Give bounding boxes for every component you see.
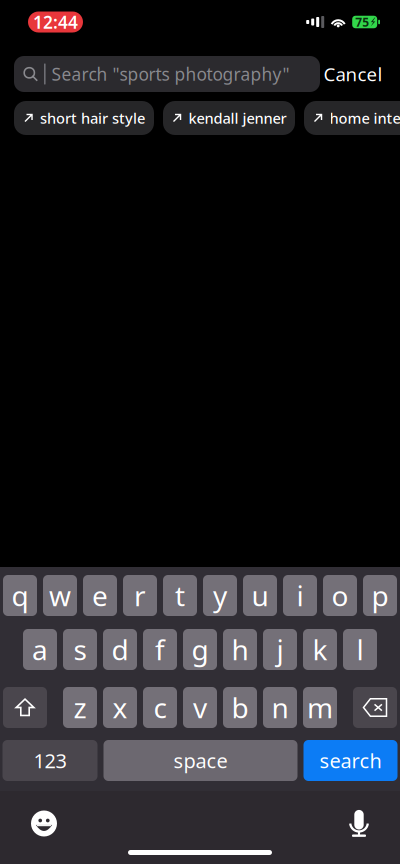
button[interactable]: a <box>23 629 57 670</box>
button[interactable]: g <box>183 629 217 670</box>
button[interactable]: Dictate <box>338 802 380 844</box>
staticText: search <box>319 747 381 774</box>
staticText: i <box>296 577 303 614</box>
staticText: w <box>49 577 71 614</box>
staticText: kendall jenner <box>188 108 286 128</box>
staticText: h <box>231 631 248 668</box>
button[interactable]: s <box>63 629 97 670</box>
button[interactable]: c <box>143 687 177 728</box>
button[interactable]: short hair style <box>14 101 154 135</box>
staticText: j <box>276 631 283 668</box>
button[interactable]: z <box>63 687 97 728</box>
staticText: z <box>73 689 86 726</box>
staticText: s <box>73 631 86 668</box>
staticText: q <box>11 577 28 614</box>
button[interactable]: w <box>43 575 77 616</box>
button[interactable]: h <box>223 629 257 670</box>
staticText: short hair style <box>40 108 145 128</box>
staticText: g <box>191 631 208 668</box>
staticText: k <box>312 631 327 668</box>
button[interactable]: home interior <box>304 101 400 135</box>
staticText: u <box>251 577 268 614</box>
staticText: 123 <box>33 747 66 774</box>
button[interactable]: e <box>83 575 117 616</box>
button[interactable]: kendall jenner <box>163 101 295 135</box>
button[interactable]: 123 <box>2 740 97 781</box>
staticText: Cancel <box>323 62 382 86</box>
button[interactable]: o <box>323 575 357 616</box>
staticText: e <box>92 577 108 614</box>
staticText: f <box>155 631 165 668</box>
staticText: space <box>173 747 227 774</box>
button[interactable]: y <box>203 575 237 616</box>
staticText: 12:44 <box>33 10 78 33</box>
button[interactable]: Shift <box>3 687 47 728</box>
button[interactable]: j <box>263 629 297 670</box>
button[interactable]: f <box>143 629 177 670</box>
button[interactable]: u <box>243 575 277 616</box>
button[interactable]: t <box>163 575 197 616</box>
staticText: a <box>32 631 48 668</box>
button[interactable]: Delete <box>353 687 397 728</box>
button[interactable]: x <box>103 687 137 728</box>
button[interactable]: space <box>103 740 297 781</box>
staticText: 75 <box>355 14 369 30</box>
button[interactable]: d <box>103 629 137 670</box>
button[interactable]: q <box>3 575 37 616</box>
staticText: v <box>193 689 207 726</box>
button[interactable]: p <box>363 575 397 616</box>
staticText: r <box>134 577 146 614</box>
button[interactable]: b <box>223 687 257 728</box>
button[interactable]: v <box>183 687 217 728</box>
button[interactable]: Cancel <box>320 56 386 92</box>
staticText: home interior <box>329 108 400 128</box>
staticText: p <box>371 577 388 614</box>
staticText: Search "sports photography" <box>52 62 290 85</box>
staticText: m <box>307 689 333 726</box>
button[interactable]: i <box>283 575 317 616</box>
button[interactable]: m <box>303 687 337 728</box>
staticText: l <box>356 631 363 668</box>
staticText: y <box>213 577 227 614</box>
staticText: b <box>231 689 248 726</box>
staticText: t <box>175 577 185 614</box>
staticText: d <box>111 631 128 668</box>
staticText: o <box>331 577 348 614</box>
button[interactable]: Emoji <box>23 802 65 844</box>
button[interactable]: r <box>123 575 157 616</box>
button[interactable]: n <box>263 687 297 728</box>
staticText: x <box>112 689 127 726</box>
staticText: n <box>271 689 288 726</box>
button[interactable]: search <box>303 740 397 781</box>
button[interactable]: l <box>343 629 377 670</box>
button[interactable]: k <box>303 629 337 670</box>
staticText: c <box>153 689 166 726</box>
